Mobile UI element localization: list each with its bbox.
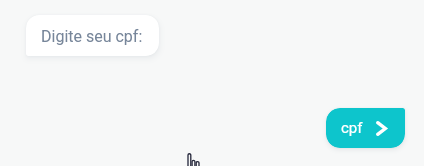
button[interactable]: Digite seu cpf: — [26, 15, 159, 56]
other: Enviar — [376, 121, 387, 136]
button[interactable]: cpf — [326, 108, 405, 148]
staticText: cpf — [341, 119, 363, 137]
staticText: Digite seu cpf: — [41, 27, 143, 46]
